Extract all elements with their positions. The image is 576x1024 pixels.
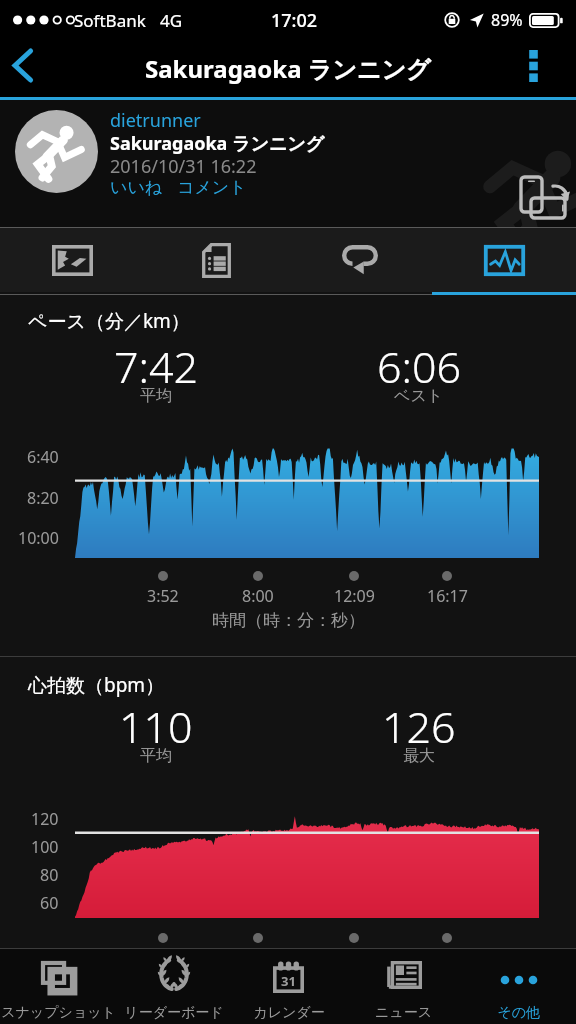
staticText: 100 xyxy=(31,836,59,858)
staticText: 6:40 xyxy=(27,446,59,468)
button[interactable]: Graphs xyxy=(432,228,576,292)
staticText: ベスト xyxy=(394,386,444,406)
staticText: 31 xyxy=(281,972,296,990)
staticText: 6:06 xyxy=(377,337,462,396)
button[interactable]: dietrunner xyxy=(110,108,201,133)
staticText: Sakuragaoka ランニング xyxy=(110,131,325,156)
staticText: 7:42 xyxy=(114,337,199,396)
staticText: SoftBank xyxy=(74,9,146,32)
staticText: その他 xyxy=(497,1004,540,1022)
staticText: ニュース xyxy=(375,1004,432,1022)
button[interactable]: Profile picture xyxy=(15,110,98,193)
staticText: 12:09 xyxy=(334,585,375,607)
button[interactable]: リーダーボード xyxy=(116,949,231,1024)
staticText: リーダーボード xyxy=(124,1004,224,1022)
button[interactable]: ニュース xyxy=(346,949,461,1024)
button[interactable]: 31 xyxy=(231,949,346,1024)
staticText: ペース（分／km） xyxy=(28,308,190,334)
staticText: 平均 xyxy=(140,386,172,406)
staticText: 3:52 xyxy=(147,585,179,607)
button[interactable]: Back xyxy=(0,40,46,97)
staticText: 8:00 xyxy=(242,585,274,607)
staticText: 126 xyxy=(382,697,456,756)
staticText: 2016/10/31 16:22 xyxy=(110,154,257,179)
button[interactable]: Notes xyxy=(144,228,288,292)
button[interactable]: コメント xyxy=(177,177,247,198)
staticText: 10:00 xyxy=(18,527,59,549)
button[interactable]: いいね xyxy=(110,177,163,198)
staticText: 110 xyxy=(119,697,193,756)
button[interactable]: Map xyxy=(0,228,144,292)
staticText: 120 xyxy=(31,808,59,830)
staticText: 最大 xyxy=(403,746,435,766)
button[interactable]: Laps xyxy=(288,228,432,292)
staticText: 平均 xyxy=(140,746,172,766)
staticText: 60 xyxy=(40,892,59,914)
button[interactable]: More options xyxy=(491,40,576,97)
staticText: 8:20 xyxy=(27,487,59,509)
staticText: スナップショット xyxy=(1,1004,116,1022)
button[interactable]: その他 xyxy=(461,949,576,1024)
staticText: 時間（時：分：秒） xyxy=(212,610,365,631)
staticText: 80 xyxy=(40,864,59,886)
staticText: カレンダー xyxy=(253,1004,325,1022)
button[interactable]: スナップショット xyxy=(0,949,116,1024)
staticText: 4G xyxy=(160,9,183,32)
button[interactable]: Rotate screen xyxy=(510,170,570,222)
staticText: 心拍数（bpm） xyxy=(28,672,165,698)
staticText: 17:02 xyxy=(271,8,318,33)
staticText: 16:17 xyxy=(427,585,468,607)
staticText: 89% xyxy=(491,9,523,31)
staticText: Sakuragaoka ランニング xyxy=(145,52,431,85)
